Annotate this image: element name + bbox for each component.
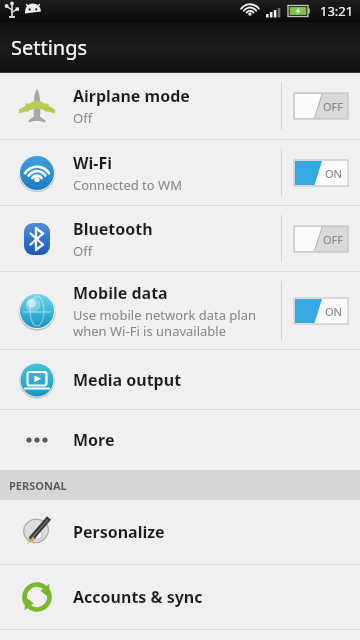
staticText: ON: [325, 304, 342, 319]
staticText: Accounts & sync: [73, 586, 203, 608]
staticText: Airplane mode: [73, 85, 190, 107]
staticText: Media output: [73, 369, 182, 391]
staticText: 13:21: [320, 2, 354, 20]
staticText: Wi-Fi: [73, 152, 112, 174]
button[interactable]: Mobile data: [0, 272, 360, 349]
staticText: OFF: [323, 232, 344, 247]
button[interactable]: Airplane mode: [0, 73, 360, 139]
button[interactable]: Media output: [0, 350, 360, 409]
button[interactable]: Accounts & sync: [0, 565, 360, 629]
button[interactable]: Wi-Fi: [0, 140, 360, 205]
staticText: Use mobile network data plan when Wi-Fi …: [73, 306, 257, 339]
staticText: Bluetooth: [73, 218, 153, 240]
button[interactable]: More: [0, 410, 360, 470]
staticText: OFF: [323, 99, 344, 114]
button[interactable]: Personalize: [0, 500, 360, 564]
staticText: Settings: [11, 34, 88, 61]
button[interactable]: Bluetooth: [0, 206, 360, 271]
button[interactable]: Mobile data switch: [282, 272, 360, 349]
button[interactable]: Airplane mode switch: [282, 73, 360, 139]
staticText: Mobile data: [73, 282, 168, 304]
staticText: More: [73, 429, 115, 451]
staticText: Connected to WM: [73, 176, 182, 194]
staticText: Off: [73, 242, 93, 260]
staticText: Off: [73, 109, 93, 127]
staticText: ON: [325, 166, 342, 181]
button[interactable]: Wi-Fi switch: [282, 140, 360, 205]
staticText: Personalize: [73, 521, 165, 543]
staticText: PERSONAL: [9, 478, 67, 493]
button[interactable]: Bluetooth switch: [282, 206, 360, 271]
